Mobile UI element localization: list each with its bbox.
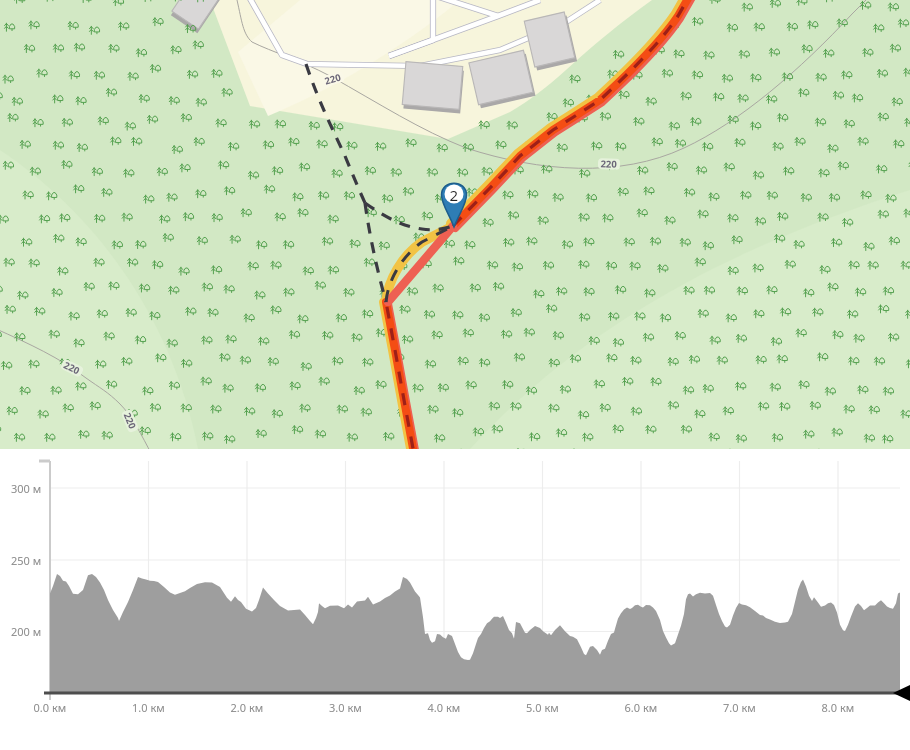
button[interactable]: Route map with elevation profile <box>0 0 910 750</box>
